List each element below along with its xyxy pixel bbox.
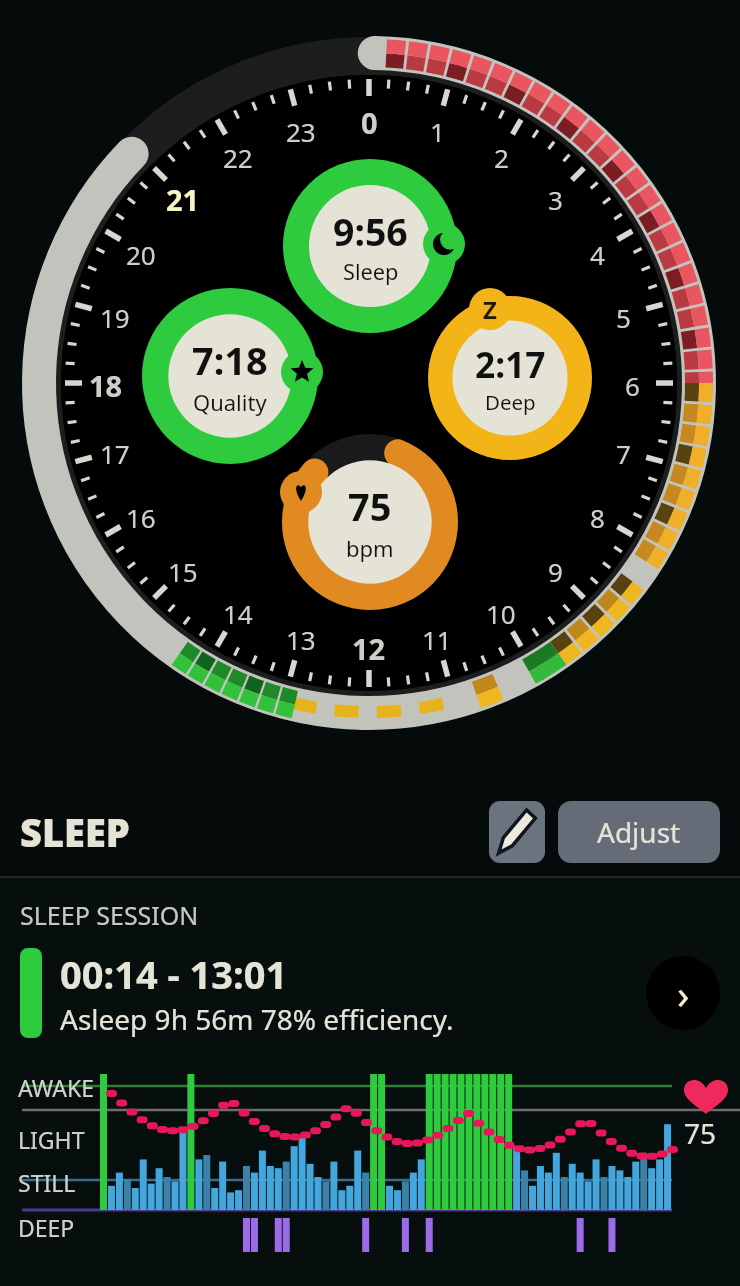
staticText: 8	[590, 500, 605, 535]
staticText: SLEEP	[20, 806, 130, 858]
staticText: 9	[548, 554, 563, 589]
staticText: LIGHT	[18, 1124, 85, 1155]
staticText: 21	[166, 180, 200, 219]
staticText: Quality	[193, 387, 267, 417]
button[interactable]: Deep sleep	[469, 288, 511, 330]
staticText: 6	[625, 368, 640, 403]
button[interactable]: Heart rate	[280, 471, 322, 513]
staticText: 3	[548, 182, 563, 217]
staticText: Sleep	[343, 257, 399, 287]
staticText: STILL	[18, 1167, 76, 1198]
staticText: SLEEP SESSION	[20, 898, 199, 932]
staticText: 11	[422, 622, 452, 657]
staticText: bpm	[346, 533, 394, 563]
staticText: 13	[286, 622, 316, 657]
staticText: 5	[616, 300, 631, 335]
staticText: 17	[100, 436, 130, 471]
button[interactable]: Sleep	[423, 223, 465, 265]
staticText: 18	[89, 366, 123, 405]
staticText: 4	[590, 237, 605, 272]
staticText: DEEP	[18, 1212, 75, 1243]
staticText: 7:18	[192, 335, 268, 387]
button[interactable]: Edit	[489, 801, 545, 863]
staticText: 75	[684, 1114, 717, 1152]
staticText: 10	[486, 596, 516, 631]
staticText: 75	[348, 481, 392, 533]
staticText: 23	[286, 114, 316, 149]
staticText: 20	[126, 237, 156, 272]
staticText: 22	[223, 140, 253, 175]
button[interactable]: Quality	[281, 351, 323, 393]
staticText: Adjust	[597, 813, 681, 851]
button[interactable]: Open session details	[646, 956, 720, 1030]
button[interactable]: 00:14 - 13:01	[0, 948, 740, 1038]
button[interactable]: 75	[282, 434, 458, 610]
staticText: 00:14 - 13:01	[60, 948, 288, 1000]
staticText: 15	[168, 554, 198, 589]
staticText: 16	[126, 500, 156, 535]
staticText: 9:56	[333, 206, 408, 257]
staticText: Asleep 9h 56m 78% efficiency.	[60, 1000, 454, 1038]
button[interactable]: Adjust	[558, 801, 720, 863]
staticText: AWAKE	[18, 1072, 94, 1103]
staticText: 2:17	[475, 340, 546, 388]
staticText: Deep	[485, 388, 536, 416]
staticText: 2	[494, 140, 509, 175]
staticText: 12	[352, 629, 386, 668]
button[interactable]: 2:17	[428, 296, 592, 460]
button[interactable]: 9:56	[283, 159, 457, 333]
staticText: 19	[100, 300, 130, 335]
staticText: 0	[361, 103, 378, 142]
staticText: Z	[483, 293, 497, 326]
button[interactable]: 7:18	[142, 288, 318, 464]
staticText: 1	[430, 114, 445, 149]
staticText: 7	[616, 436, 631, 471]
staticText: ›	[677, 966, 690, 1020]
staticText: 14	[223, 596, 253, 631]
